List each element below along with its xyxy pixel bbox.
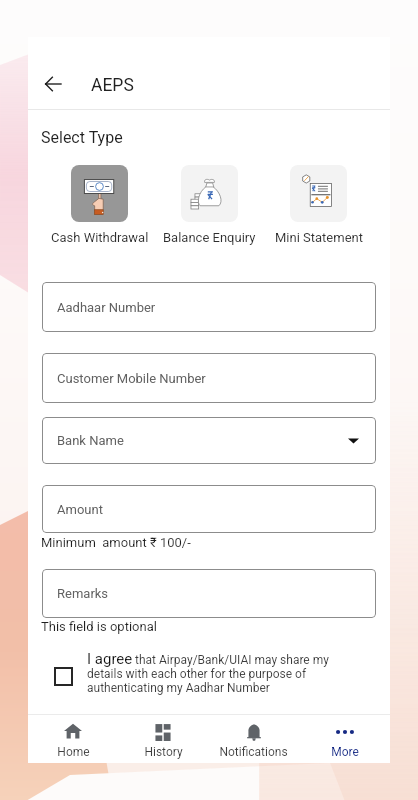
button[interactable]: Mini Statement <box>259 165 378 245</box>
staticText: More <box>331 745 359 759</box>
button[interactable]: History <box>118 715 208 763</box>
button[interactable]: Aadhaar Number <box>42 282 376 332</box>
button[interactable]: Amount <box>42 485 376 533</box>
staticText: Cash Withdrawal <box>51 230 149 245</box>
staticText: authenticating my Aadhar Number <box>87 681 270 695</box>
staticText: Customer Mobile Number <box>57 371 206 386</box>
staticText: that Airpay/Bank/UIAI may share my <box>135 653 329 667</box>
staticText: Select Type <box>41 128 123 147</box>
staticText: Remarks <box>57 586 109 601</box>
button[interactable]: Bank Name <box>42 417 376 464</box>
staticText: AEPS <box>91 75 134 96</box>
button[interactable]: I agree checkbox <box>54 667 73 686</box>
button[interactable]: Remarks <box>42 569 376 618</box>
staticText: Balance Enquiry <box>163 230 256 245</box>
staticText: Notifications <box>219 745 288 759</box>
staticText: Home <box>57 745 90 759</box>
staticText: Amount <box>57 502 103 517</box>
button[interactable]: Notifications <box>208 715 299 763</box>
staticText: Bank Name <box>57 433 124 448</box>
button[interactable]: Home <box>28 715 118 763</box>
staticText: Minimum amount ₹ 100/- <box>41 535 191 550</box>
staticText: I agree <box>87 650 133 668</box>
button[interactable]: Back <box>32 63 74 105</box>
staticText: Mini Statement <box>275 230 363 245</box>
staticText: This field is optional <box>41 619 157 634</box>
button[interactable]: Balance Enquiry <box>150 165 269 245</box>
staticText: History <box>144 745 183 759</box>
staticText: details with each other for the purpose … <box>87 667 307 681</box>
button[interactable]: Cash Withdrawal <box>40 165 159 245</box>
button[interactable]: I agree <box>87 647 377 697</box>
staticText: Aadhaar Number <box>57 300 156 315</box>
button[interactable]: More <box>299 715 390 763</box>
button[interactable]: Customer Mobile Number <box>42 353 376 403</box>
